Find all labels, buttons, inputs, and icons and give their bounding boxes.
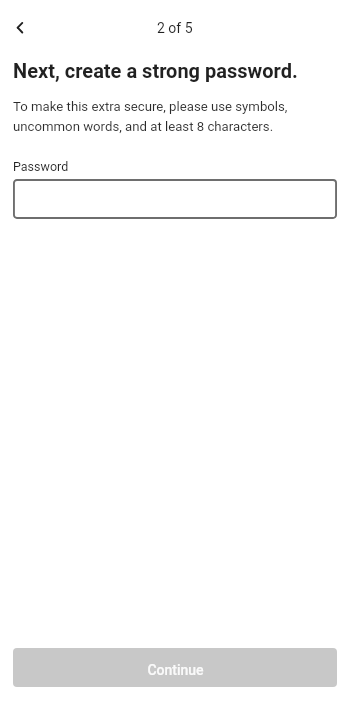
staticText: To make this extra secure, please use sy… [13,99,337,134]
button[interactable]: Continue [13,648,337,687]
button[interactable]: Password input field [13,179,337,219]
button[interactable]: Back [0,5,42,49]
staticText: 2 of 5 [157,20,193,36]
staticText: Continue [147,662,204,678]
staticText: Password [13,159,69,174]
staticText: Next, create a strong password. [13,59,298,82]
